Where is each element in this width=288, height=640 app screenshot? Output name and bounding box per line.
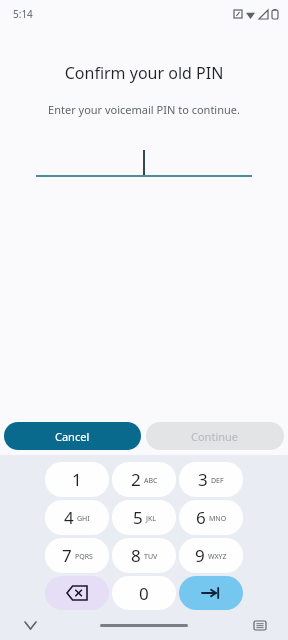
staticText: ABC xyxy=(144,476,158,486)
staticText: 2 xyxy=(131,468,141,491)
button[interactable]: 9 xyxy=(179,538,243,573)
staticText: 5 xyxy=(133,506,143,529)
button[interactable]: 6 xyxy=(179,500,243,535)
button[interactable]: 5 xyxy=(112,500,176,535)
button[interactable]: 8 xyxy=(112,538,176,573)
button[interactable]: Switch keyboard xyxy=(250,615,270,635)
staticText: Continue xyxy=(191,429,239,444)
staticText: 6 xyxy=(196,506,206,529)
button[interactable]: Cancel xyxy=(4,422,141,450)
staticText: 1 xyxy=(72,468,82,491)
staticText: 9 xyxy=(195,544,205,567)
staticText: 7 xyxy=(62,544,72,567)
button[interactable]: 3 xyxy=(179,462,243,497)
button[interactable]: Backspace xyxy=(45,576,109,610)
staticText: WXYZ xyxy=(208,552,227,562)
staticText: MNO xyxy=(209,514,227,524)
button[interactable]: 0 xyxy=(112,576,176,610)
staticText: Enter your voicemail PIN to continue. xyxy=(0,102,288,117)
button[interactable]: 7 xyxy=(45,538,109,573)
button[interactable]: Hide keyboard xyxy=(20,615,40,635)
button[interactable]: Next xyxy=(179,576,243,610)
staticText: 0 xyxy=(139,582,149,605)
staticText: Cancel xyxy=(55,429,90,444)
button[interactable]: 2 xyxy=(112,462,176,497)
staticText: Confirm your old PIN xyxy=(0,62,288,84)
button[interactable]: 4 xyxy=(45,500,109,535)
button[interactable]: 1 xyxy=(45,462,109,497)
staticText: GHI xyxy=(77,514,90,524)
staticText: TUV xyxy=(144,552,158,562)
staticText: 4 xyxy=(64,506,74,529)
button[interactable]: Continue xyxy=(146,422,284,450)
staticText: 8 xyxy=(131,544,141,567)
staticText: PQRS xyxy=(75,552,93,562)
staticText: 5:14 xyxy=(13,7,33,21)
staticText: 3 xyxy=(198,468,208,491)
staticText: DEF xyxy=(211,476,224,486)
staticText: JKL xyxy=(146,514,156,524)
